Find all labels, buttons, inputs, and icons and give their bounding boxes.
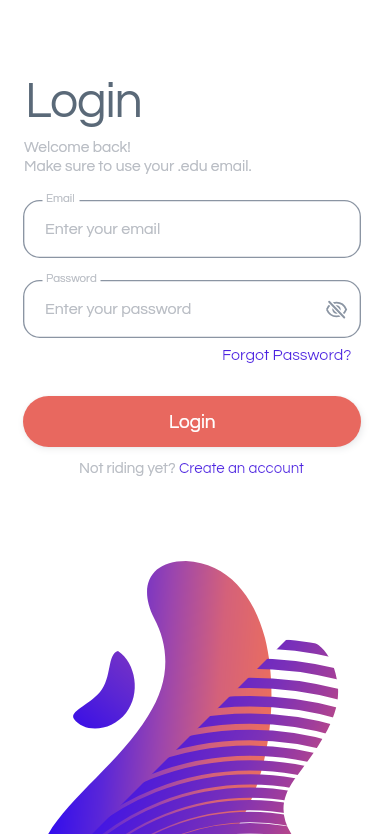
staticText: Password [46,273,97,285]
button[interactable]: Email [23,200,361,258]
button[interactable]: Create an account [179,461,304,476]
button[interactable]: Password [23,280,361,338]
staticText: Not riding yet? [79,461,179,476]
staticText: Enter your email [45,221,161,237]
staticText: Welcome back! [24,139,131,155]
button[interactable]: Login [23,396,361,447]
staticText: Create an account [179,461,304,476]
button[interactable]: Show password [318,291,354,327]
staticText: Login [169,412,216,432]
staticText: Enter your password [45,301,192,317]
staticText: Email [46,193,75,205]
staticText: Forgot Password? [222,347,352,363]
button[interactable]: Forgot Password? [214,343,360,367]
staticText: Make sure to use your .edu email. [24,158,252,174]
staticText: Login [25,76,142,128]
